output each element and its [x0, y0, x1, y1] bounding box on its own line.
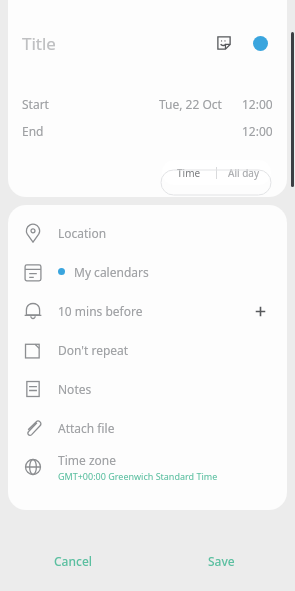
staticText: Start	[22, 96, 49, 112]
button[interactable]: Location	[8, 213, 287, 252]
staticText: Location	[58, 225, 107, 241]
button[interactable]: End	[8, 118, 287, 144]
button[interactable]: Add notification	[247, 298, 273, 324]
other: Location	[22, 222, 44, 244]
staticText: GMT+00:00 Greenwich Standard Time	[58, 470, 218, 482]
button[interactable]: Add sticker	[211, 30, 237, 56]
button[interactable]: Time	[162, 160, 216, 185]
button[interactable]: Save	[147, 531, 295, 591]
other: Notification	[22, 300, 44, 322]
staticText: Time zone	[58, 452, 116, 468]
other: Notes	[22, 378, 44, 400]
button[interactable]: Event colour	[247, 30, 273, 56]
staticText: Tue, 22 Oct	[159, 96, 222, 112]
staticText: All day	[228, 166, 260, 180]
button[interactable]: Attach file	[8, 408, 287, 447]
other: Attach file	[22, 417, 44, 439]
button[interactable]: Time zone	[8, 447, 287, 486]
staticText: 12:00	[242, 123, 273, 139]
button[interactable]: Title	[22, 32, 211, 55]
staticText: 12:00	[242, 96, 273, 112]
staticText: My calendars	[74, 264, 149, 280]
other: Repeat	[22, 339, 44, 361]
staticText: Cancel	[54, 553, 93, 569]
button[interactable]: Repeat	[8, 330, 287, 369]
button[interactable]: Cancel	[0, 531, 147, 591]
staticText: End	[22, 123, 44, 139]
button[interactable]: Calendar	[8, 252, 287, 291]
button[interactable]: All day	[217, 160, 271, 185]
staticText: Save	[208, 553, 235, 569]
staticText: Attach file	[58, 420, 115, 436]
other: Time zone	[22, 456, 44, 478]
button[interactable]: Start	[8, 90, 287, 118]
staticText: Don't repeat	[58, 342, 129, 358]
button[interactable]: Notes	[8, 369, 287, 408]
button[interactable]: Notification	[8, 291, 287, 330]
staticText: Notes	[58, 381, 92, 397]
staticText: 10 mins before	[58, 303, 143, 319]
staticText: Time	[177, 166, 201, 180]
other: Calendar	[22, 261, 44, 283]
